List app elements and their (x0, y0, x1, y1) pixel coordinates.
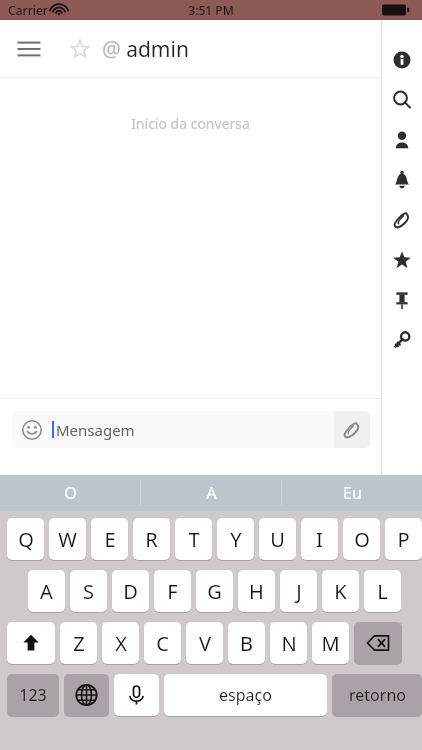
staticText: B (240, 630, 253, 657)
staticText: T (188, 526, 200, 553)
button[interactable]: H (238, 570, 275, 612)
staticText: A (206, 482, 217, 504)
staticText: Eu (343, 482, 362, 504)
staticText: N (281, 630, 297, 657)
button[interactable]: W (49, 518, 86, 560)
button[interactable]: V (186, 622, 223, 664)
button[interactable]: Attach file (334, 411, 370, 448)
button[interactable]: Z (60, 622, 97, 664)
staticText: M (321, 630, 340, 657)
button[interactable]: Eu (282, 475, 422, 511)
staticText: retorno (349, 684, 406, 706)
button[interactable]: S (70, 570, 107, 612)
button[interactable]: Shift (7, 622, 55, 664)
staticText: J (296, 578, 302, 605)
button[interactable]: M (312, 622, 349, 664)
button[interactable]: U (259, 518, 296, 560)
staticText: D (123, 578, 138, 605)
button[interactable]: D (112, 570, 149, 612)
button[interactable]: F (154, 570, 191, 612)
button[interactable]: A (141, 475, 281, 511)
staticText: U (270, 526, 285, 553)
staticText: H (249, 578, 264, 605)
staticText: Início da conversa (131, 114, 250, 133)
button[interactable]: G (196, 570, 233, 612)
button[interactable]: Search (382, 80, 422, 120)
button[interactable]: X (102, 622, 139, 664)
button[interactable]: Backspace (354, 622, 402, 664)
staticText: E (104, 526, 116, 553)
staticText: R (145, 526, 158, 553)
button[interactable]: @ (102, 35, 189, 64)
button[interactable]: B (228, 622, 265, 664)
button[interactable]: 123 (7, 674, 59, 716)
button[interactable]: Pinned messages (382, 280, 422, 320)
button[interactable]: retorno (332, 674, 422, 716)
staticText: P (397, 526, 410, 553)
staticText: 123 (19, 684, 47, 706)
button[interactable]: Dictation (114, 674, 159, 716)
staticText: X (115, 630, 127, 657)
staticText: O (64, 482, 77, 504)
button[interactable]: N (270, 622, 307, 664)
button[interactable]: Files (382, 200, 422, 240)
staticText: Y (230, 526, 242, 553)
button[interactable]: Q (7, 518, 44, 560)
button[interactable]: O (343, 518, 380, 560)
staticText: Z (73, 630, 85, 657)
staticText: W (58, 526, 77, 553)
button[interactable]: Members (382, 120, 422, 160)
button[interactable]: P (385, 518, 422, 560)
staticText: L (377, 578, 388, 605)
staticText: A (40, 578, 53, 605)
staticText: Mensagem (56, 420, 135, 440)
staticText: O (354, 526, 370, 553)
button[interactable]: I (301, 518, 338, 560)
staticText: Q (18, 526, 34, 553)
staticText: Carrier (8, 2, 48, 18)
staticText: G (207, 578, 222, 605)
staticText: K (334, 578, 347, 605)
button[interactable]: T (175, 518, 212, 560)
button[interactable]: C (144, 622, 181, 664)
staticText: admin (126, 35, 189, 64)
staticText: S (83, 578, 94, 605)
button[interactable]: Starred messages (382, 240, 422, 280)
button[interactable]: Y (217, 518, 254, 560)
button[interactable]: Emoji (12, 411, 52, 448)
button[interactable]: Info (382, 40, 422, 80)
button[interactable]: K (322, 570, 359, 612)
staticText: V (199, 630, 211, 657)
button[interactable]: R (133, 518, 170, 560)
button[interactable]: A (28, 570, 65, 612)
staticText: 3:51 PM (188, 2, 234, 18)
button[interactable]: L (364, 570, 401, 612)
button[interactable]: Notifications (382, 160, 422, 200)
button[interactable]: Change keyboard (64, 674, 109, 716)
button[interactable]: Permissions (382, 320, 422, 360)
button[interactable]: espaço (164, 674, 327, 716)
staticText: I (316, 526, 323, 553)
button[interactable]: O (0, 475, 140, 511)
button[interactable]: J (280, 570, 317, 612)
button[interactable]: Menu (0, 20, 58, 78)
staticText: espaço (219, 684, 272, 706)
button[interactable]: Favorite (58, 24, 102, 74)
button[interactable]: E (91, 518, 128, 560)
staticText: F (167, 578, 178, 605)
button[interactable]: Mensagem (52, 411, 334, 448)
staticText: @ (102, 35, 121, 64)
staticText: C (156, 630, 169, 657)
